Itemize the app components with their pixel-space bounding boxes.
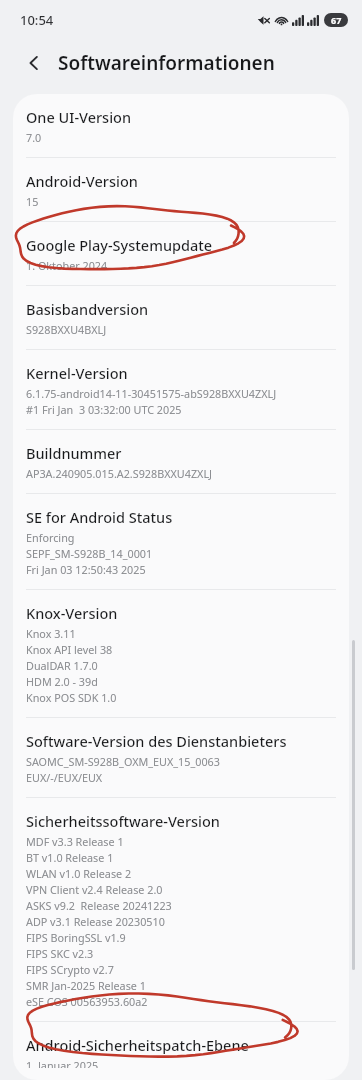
staticText: 10:54 (20, 11, 54, 29)
staticText: Android-Version (26, 171, 138, 191)
staticText: Basisbandversion (26, 299, 149, 319)
staticText: 6.1.75-android14-11-30451575-abS928BXXU4… (26, 386, 277, 401)
staticText: Fri Jan 03 12:50:43 2025 (26, 562, 146, 577)
staticText: Softwareinformationen (58, 50, 275, 76)
staticText: MDF v3.3 Release 1 (26, 834, 124, 849)
button[interactable]: SE for Android Status (13, 494, 349, 589)
staticText: #1 Fri Jan 3 03:32:00 UTC 2025 (26, 402, 182, 417)
staticText: Knox-Version (26, 603, 118, 623)
staticText: 15 (26, 194, 39, 209)
button[interactable]: Kernel-Version (13, 350, 349, 429)
staticText: AP3A.240905.015.A2.S928BXXU4ZXLJ (26, 466, 213, 481)
staticText: WLAN v1.0 Release 2 (26, 866, 132, 881)
staticText: VPN Client v2.4 Release 2.0 (26, 882, 163, 897)
button[interactable]: Basisbandversion (13, 286, 349, 349)
staticText: Google Play-Systemupdate (26, 235, 213, 255)
staticText: SEPF_SM-S928B_14_0001 (26, 546, 153, 561)
staticText: Knox 3.11 (26, 626, 76, 641)
button[interactable]: Software-Version des Dienstanbieters (13, 718, 349, 797)
staticText: Knox POS SDK 1.0 (26, 690, 117, 705)
staticText: S928BXXU4BXLJ (26, 322, 107, 337)
staticText: BT v1.0 Release 1 (26, 850, 114, 865)
staticText: 67 (331, 14, 342, 26)
staticText: Android-Sicherheitspatch-Ebene (26, 1035, 249, 1055)
staticText: DualDAR 1.7.0 (26, 658, 98, 673)
button[interactable]: Android-Version (13, 158, 349, 221)
staticText: One UI-Version (26, 107, 132, 127)
staticText: Sicherheitssoftware-Version (26, 811, 220, 831)
staticText: EUX/-/EUX/EUX (26, 770, 103, 785)
button[interactable]: Buildnummer (13, 430, 349, 493)
button[interactable]: Zurück (20, 49, 48, 77)
staticText: ASKS v9.2 Release 20241223 (26, 898, 172, 913)
button[interactable]: Sicherheitssoftware-Version (13, 798, 349, 1021)
staticText: Software-Version des Dienstanbieters (26, 731, 287, 751)
staticText: eSE COS 00563953.60a2 (26, 994, 148, 1009)
button[interactable]: Google Play-Systemupdate (13, 222, 349, 285)
staticText: SAOMC_SM-S928B_OXM_EUX_15_0063 (26, 754, 220, 769)
staticText: Knox API level 38 (26, 642, 113, 657)
button[interactable]: One UI-Version (13, 94, 349, 157)
staticText: 1. Januar 2025 (26, 1058, 99, 1068)
button[interactable]: Android-Sicherheitspatch-Ebene (13, 1022, 349, 1080)
staticText: Kernel-Version (26, 363, 128, 383)
staticText: ADP v3.1 Release 20230510 (26, 914, 165, 929)
staticText: 7.0 (26, 130, 42, 145)
staticText: HDM 2.0 - 39d (26, 674, 98, 689)
staticText: FIPS SCrypto v2.7 (26, 962, 114, 977)
staticText: SMR Jan-2025 Release 1 (26, 978, 146, 993)
staticText: FIPS BoringSSL v1.9 (26, 930, 126, 945)
button[interactable]: Knox-Version (13, 590, 349, 717)
staticText: 1. Oktober 2024 (26, 258, 108, 273)
staticText: Enforcing (26, 530, 75, 545)
staticText: FIPS SKC v2.3 (26, 946, 94, 961)
staticText: SE for Android Status (26, 507, 173, 527)
staticText: Buildnummer (26, 443, 122, 463)
